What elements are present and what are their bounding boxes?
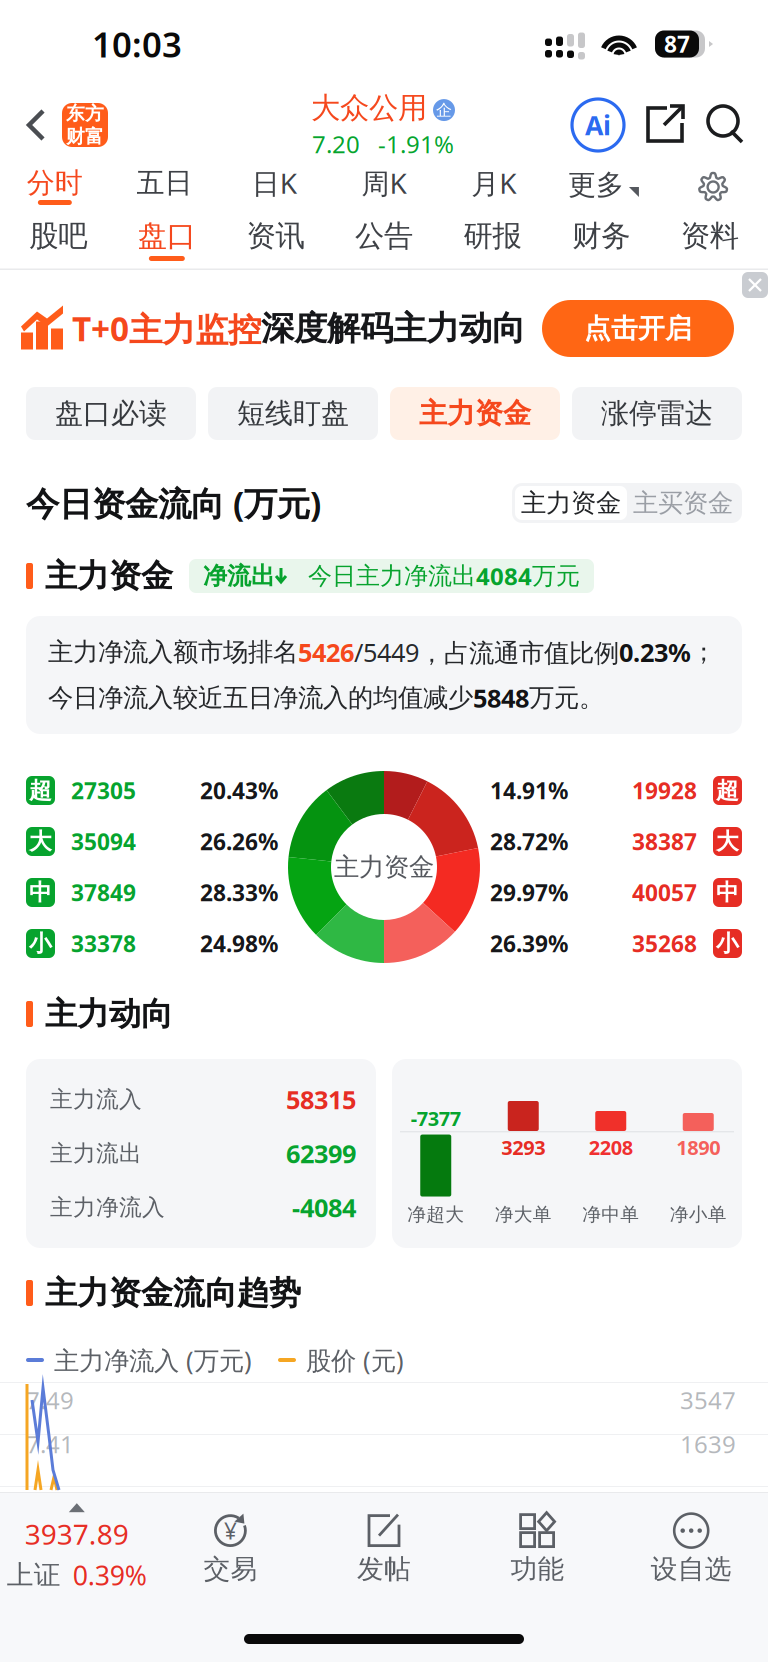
staticText: Ai: [585, 107, 611, 143]
button[interactable]: 设自选: [614, 1511, 768, 1585]
staticText: 58315: [286, 1083, 356, 1116]
staticText: 28.72%: [490, 826, 568, 856]
staticText: 点击开启: [584, 312, 692, 345]
staticText: 交易: [203, 1553, 257, 1585]
button[interactable]: 五日: [110, 162, 219, 212]
button[interactable]: ¥: [154, 1511, 307, 1585]
staticText: 主力资金: [521, 487, 621, 518]
button[interactable]: 点击开启: [542, 300, 734, 357]
button[interactable]: East Money: [62, 103, 108, 147]
staticText: 大: [29, 828, 52, 855]
staticText: 东方: [66, 102, 104, 125]
staticText: 资讯: [246, 218, 304, 254]
staticText: 中: [716, 879, 739, 906]
button[interactable]: 涨停雷达: [572, 387, 742, 440]
staticText: 资料: [681, 218, 739, 254]
staticText: 日K: [252, 164, 297, 202]
staticText: 主力资金: [419, 396, 531, 431]
staticText: 研报: [464, 218, 522, 254]
staticText: 主力资金流向趋势: [45, 1273, 301, 1313]
staticText: 功能: [511, 1553, 565, 1585]
button[interactable]: 研报: [438, 212, 547, 270]
staticText: 10:03: [92, 21, 182, 67]
staticText: 7.49: [26, 1384, 74, 1416]
staticText: 小: [716, 930, 739, 957]
button[interactable]: 分时: [0, 162, 110, 212]
staticText: 19928: [632, 775, 697, 805]
staticText: 净中单: [582, 1203, 639, 1226]
staticText: 万元: [532, 561, 580, 591]
staticText: ¥: [224, 1516, 237, 1546]
staticText: 净流出: [203, 561, 275, 591]
staticText: 29.97%: [490, 877, 568, 907]
staticText: -7377: [411, 1105, 461, 1132]
staticText: 财富: [66, 125, 104, 148]
button[interactable]: 周K: [329, 162, 439, 212]
staticText: 万元。: [529, 682, 604, 713]
staticText: 大众公用: [311, 90, 427, 126]
button[interactable]: AI assistant: [572, 99, 624, 151]
staticText: 24.98%: [200, 928, 278, 958]
staticText: 4084: [476, 560, 532, 592]
staticText: 股价 (元): [306, 1343, 404, 1377]
button[interactable]: 主力资金: [515, 486, 627, 520]
button[interactable]: 月K: [439, 162, 549, 212]
staticText: 财务: [572, 218, 630, 254]
button[interactable]: 盘口: [113, 212, 221, 270]
button[interactable]: 日K: [219, 162, 329, 212]
button[interactable]: 3937.89: [0, 1503, 154, 1593]
button[interactable]: 功能: [461, 1511, 614, 1585]
staticText: 企: [436, 100, 452, 120]
button[interactable]: 盘口必读: [26, 387, 196, 440]
staticText: 今日资金流向 (万元): [26, 481, 321, 525]
staticText: 公告: [355, 218, 413, 254]
staticText: 周K: [361, 164, 406, 202]
staticText: 35268: [632, 928, 697, 958]
staticText: 35094: [71, 826, 136, 856]
staticText: 3547: [680, 1384, 736, 1416]
staticText: 超: [29, 777, 52, 804]
staticText: 1639: [680, 1428, 736, 1460]
staticText: 更多: [568, 168, 624, 202]
staticText: 33378: [71, 928, 136, 958]
staticText: 主力资金: [45, 556, 173, 596]
staticText: 主力流入: [50, 1086, 142, 1113]
staticText: 7.20 -1.91%: [312, 128, 454, 160]
button[interactable]: Share: [644, 103, 688, 147]
staticText: 今日净流入较近五日净流入的均值减少: [48, 682, 473, 713]
button[interactable]: Close: [742, 272, 768, 298]
staticText: T+0主力监控: [72, 306, 261, 351]
staticText: 盘口: [138, 218, 196, 254]
button[interactable]: 发帖: [307, 1511, 461, 1585]
button[interactable]: 主力资金: [390, 387, 560, 440]
button[interactable]: 资料: [655, 212, 764, 270]
staticText: 主力流出: [50, 1140, 142, 1167]
staticText: ；: [691, 637, 716, 668]
staticText: 大: [716, 828, 739, 855]
staticText: 设自选: [651, 1553, 732, 1585]
button[interactable]: 财务: [547, 212, 655, 270]
button[interactable]: 更多: [549, 162, 658, 212]
staticText: -4084: [292, 1191, 356, 1224]
staticText: 37849: [71, 877, 136, 907]
staticText: 62399: [286, 1137, 356, 1170]
button[interactable]: Settings: [658, 162, 768, 212]
staticText: 20.43%: [200, 775, 278, 805]
staticText: 深度解码主力动向: [261, 308, 525, 349]
staticText: 26.39%: [490, 928, 568, 958]
staticText: 净大单: [495, 1203, 552, 1226]
staticText: 短线盯盘: [237, 396, 349, 431]
button[interactable]: Back: [18, 95, 54, 155]
staticText: 26.26%: [200, 826, 278, 856]
staticText: 净小单: [670, 1203, 727, 1226]
staticText: 主力净流入额市场排名: [48, 637, 298, 668]
button[interactable]: 股吧: [4, 212, 113, 270]
button[interactable]: 公告: [330, 212, 438, 270]
button[interactable]: 资讯: [221, 212, 330, 270]
staticText: 涨停雷达: [601, 396, 713, 431]
button[interactable]: Search: [704, 103, 748, 147]
button[interactable]: 短线盯盘: [208, 387, 378, 440]
button[interactable]: 主买资金: [627, 486, 739, 520]
staticText: 3293: [501, 1134, 545, 1161]
staticText: 中: [29, 879, 52, 906]
